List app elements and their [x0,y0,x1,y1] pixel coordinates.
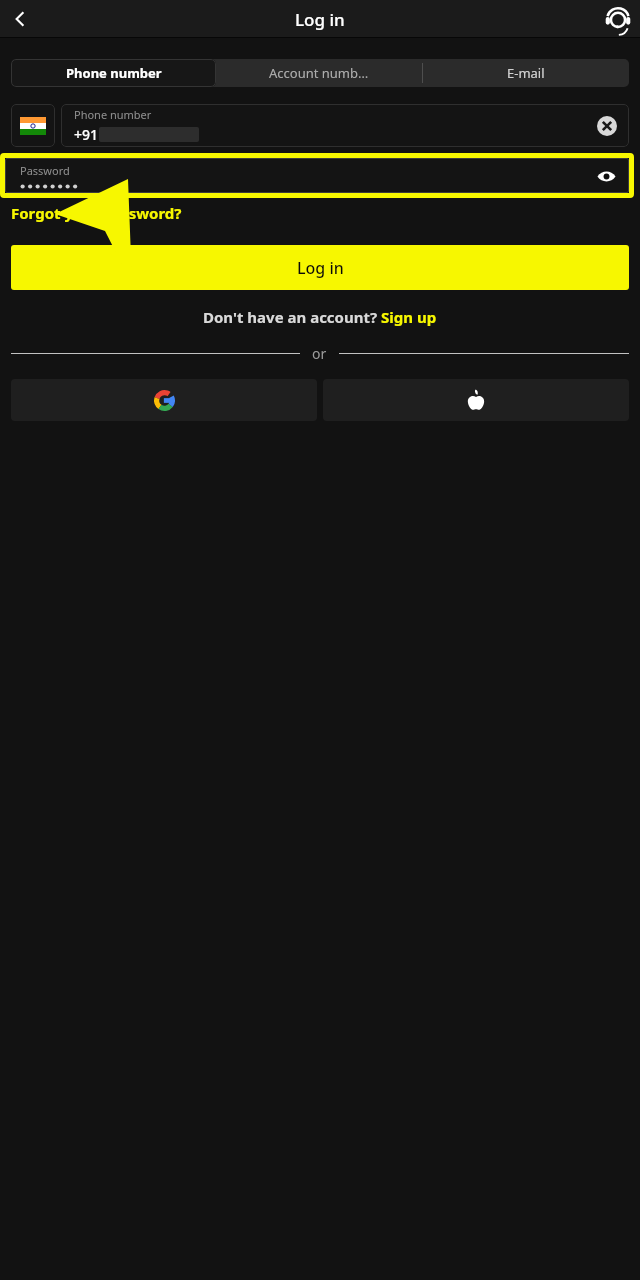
staticText: +91 [74,125,99,144]
button[interactable]: Password [5,158,629,193]
button[interactable]: Phone number [11,59,216,87]
button[interactable]: Phone number [61,104,629,147]
staticText: Phone number [74,107,152,122]
staticText: Log in [295,8,345,31]
staticText: Phone number [66,64,162,82]
button[interactable]: Country code India [11,104,55,147]
staticText: Password [20,163,70,178]
button[interactable]: Sign in with Apple [323,379,629,421]
button[interactable]: Back [3,2,37,36]
button[interactable]: E-mail [423,59,629,87]
staticText: or [312,344,327,363]
button[interactable]: Sign in with Google [11,379,317,421]
staticText: Forgot your password? [11,203,182,223]
button[interactable]: Log in [11,245,629,290]
button[interactable]: Show password [594,164,618,188]
button[interactable]: Forgot your password? [11,203,182,223]
button[interactable]: Customer support [603,4,633,34]
staticText: E-mail [507,64,545,82]
staticText: Account numb… [269,64,369,82]
button[interactable]: Don't have an account? Sign up [203,307,437,327]
button[interactable]: Clear phone number [597,116,617,136]
staticText: Log in [297,257,344,279]
button[interactable]: Account numb… [216,59,422,87]
